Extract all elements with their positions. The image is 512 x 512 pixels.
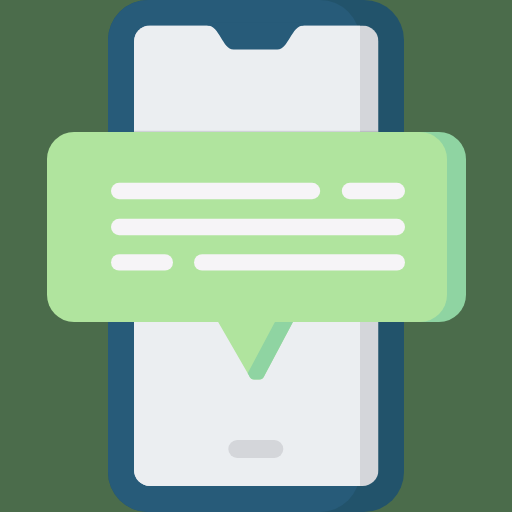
button[interactable]: Phone message illustration	[0, 0, 512, 512]
